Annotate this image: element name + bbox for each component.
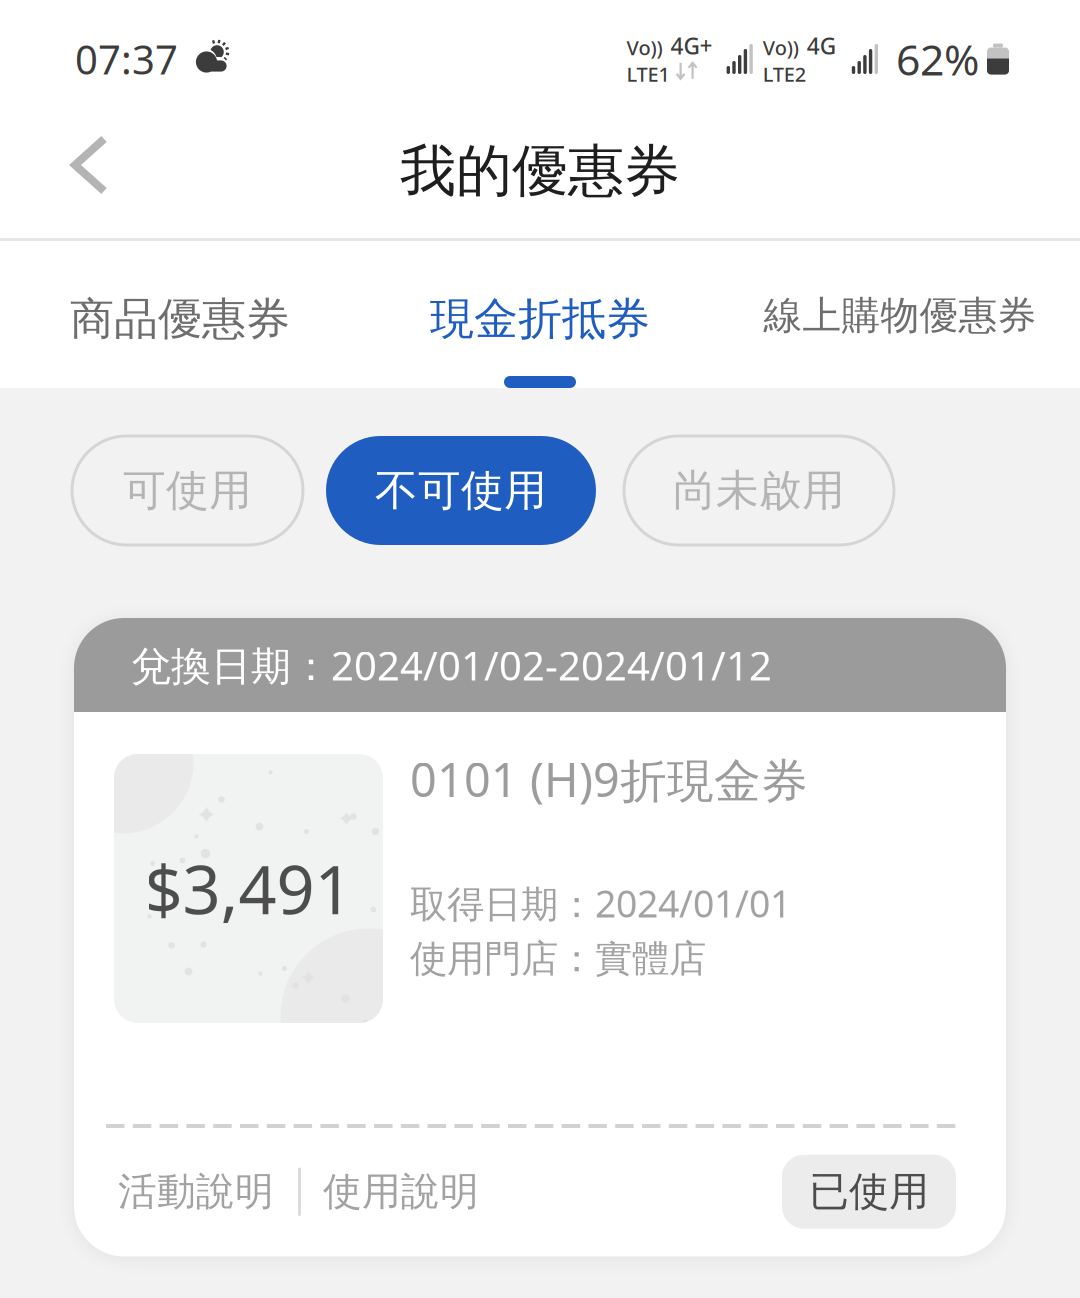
button[interactable]: 商品優惠券 (0, 241, 360, 388)
staticText: 尚未啟用 (673, 464, 845, 517)
staticText: 使用門店：實體店 (410, 936, 706, 982)
button[interactable]: 可使用 (72, 436, 303, 545)
staticText: LTE2 (763, 61, 806, 87)
button[interactable]: 線上購物優惠券 (720, 241, 1080, 388)
staticText: 商品優惠券 (70, 292, 290, 346)
button[interactable]: 使用說明 (323, 1154, 479, 1229)
staticText: $3,491 (144, 844, 352, 933)
staticText: Vo)) (763, 34, 799, 61)
staticText: LTE1 (627, 61, 670, 87)
staticText: 4G+ (671, 31, 713, 61)
staticText: 07:37 (75, 32, 178, 85)
staticText: 不可使用 (375, 464, 547, 517)
button[interactable]: 已使用 (782, 1155, 956, 1229)
staticText: 兌換日期：2024/01/02-2024/01/12 (131, 638, 772, 691)
button[interactable]: 現金折抵券 (360, 241, 720, 388)
staticText: Vo)) (627, 34, 663, 61)
button[interactable]: 不可使用 (326, 436, 596, 545)
button[interactable]: Back (0, 121, 136, 221)
staticText: 4G (807, 31, 836, 61)
staticText: 可使用 (123, 464, 252, 517)
staticText: 已使用 (809, 1167, 929, 1216)
staticText: 0101 (H)9折現金券 (410, 748, 808, 810)
staticText: 現金折抵券 (430, 292, 650, 346)
staticText: 62% (896, 31, 979, 87)
staticText: 線上購物優惠券 (763, 292, 1036, 339)
staticText: 活動說明 (118, 1168, 274, 1215)
button[interactable]: 尚未啟用 (624, 436, 894, 545)
staticText: 取得日期：2024/01/01 (410, 878, 791, 928)
button[interactable]: 活動說明 (118, 1154, 274, 1229)
staticText: 使用說明 (323, 1168, 479, 1215)
staticText: 我的優惠券 (400, 137, 680, 205)
